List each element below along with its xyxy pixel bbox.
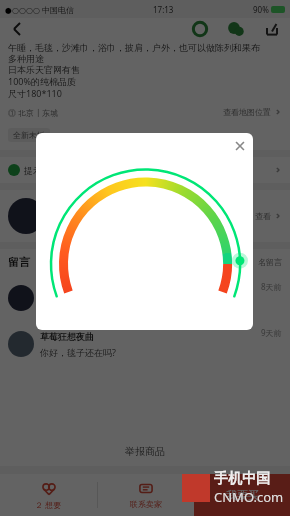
- staticText: 尺寸180*110: [8, 87, 62, 99]
- staticText: ２ 想要: [35, 499, 62, 510]
- button[interactable]: 草莓狂想夜曲: [8, 321, 282, 367]
- staticText: 草莓狂想夜曲: [40, 331, 94, 342]
- staticText: omniGin 🎈: [40, 284, 92, 296]
- button[interactable]: omniGin 🎈: [8, 275, 282, 321]
- button[interactable]: Share: [262, 19, 282, 39]
- staticText: 多种用途: [8, 53, 44, 64]
- staticText: 8天前: [261, 281, 282, 292]
- button[interactable]: Moments: [190, 19, 210, 39]
- staticText: 提示: [24, 165, 42, 176]
- staticText: 90%: [253, 4, 269, 15]
- button[interactable]: Close: [231, 137, 249, 155]
- staticText: 17:13: [153, 4, 174, 15]
- button[interactable]: ２ 想要: [0, 474, 97, 516]
- staticText: 日本乐天官网有售: [8, 64, 80, 75]
- staticText: 名留言: [258, 257, 282, 267]
- staticText: 查看: [255, 211, 271, 221]
- staticText: 留言: [8, 255, 30, 269]
- button[interactable]: WeChat: [226, 19, 246, 39]
- staticText: 联系卖家: [130, 499, 162, 509]
- staticText: 举报商品: [125, 445, 165, 458]
- button[interactable]: 查看: [8, 190, 282, 242]
- button[interactable]: Back: [8, 20, 26, 38]
- staticText: 全新未拆: [13, 130, 45, 140]
- staticText: CNMO.com: [214, 488, 284, 506]
- staticText: 手机中国: [214, 470, 270, 488]
- staticText: ⓵ 北京｜东城: [8, 107, 59, 118]
- staticText: 午睡，毛毯，沙滩巾，浴巾，披肩，户外，也可以做陈列和果布: [8, 42, 260, 53]
- staticText: 我要买: [226, 488, 259, 502]
- staticText: 100%的纯棉品质: [8, 75, 76, 87]
- button[interactable]: 我要买: [194, 474, 290, 516]
- staticText: ●○○○○ 中国电信: [5, 4, 74, 15]
- button[interactable]: 提示: [8, 157, 282, 183]
- staticText: 查看地图位置: [223, 107, 271, 117]
- button[interactable]: ⓵ 北京｜东城: [8, 103, 282, 121]
- staticText: 9天前: [261, 327, 282, 338]
- button[interactable]: 联系卖家: [98, 474, 194, 516]
- staticText: 你好，毯子还在吗?: [40, 346, 116, 358]
